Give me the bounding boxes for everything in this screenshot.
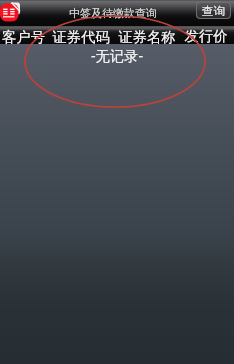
staticText: 查询 xyxy=(202,4,225,18)
staticText: 中签及待缴款查询 xyxy=(69,6,157,20)
button[interactable]: 客户号 xyxy=(0,27,46,47)
staticText: 发行价格 xyxy=(178,27,234,47)
staticText: 证券代码 xyxy=(52,28,110,46)
button[interactable]: 证券代码 xyxy=(46,27,116,47)
button[interactable]: 发行价格 xyxy=(178,27,234,47)
button[interactable]: App logo xyxy=(0,0,21,22)
staticText: 证券名称 xyxy=(118,28,176,46)
staticText: -无记录- xyxy=(91,46,144,66)
staticText: 客户号 xyxy=(2,28,45,46)
button[interactable]: 查询 xyxy=(197,3,230,18)
button[interactable]: 证券名称 xyxy=(116,27,178,47)
